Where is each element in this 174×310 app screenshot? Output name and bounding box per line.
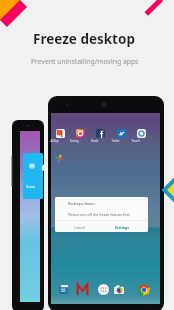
- button[interactable]: drawer: [98, 284, 109, 295]
- button[interactable]: instagram: [76, 129, 85, 138]
- staticText: Desktop is frozen.: [68, 202, 96, 206]
- staticText: Freeze desktop: [33, 30, 135, 48]
- staticText: Prevent uninstalling/moving apps: [31, 57, 139, 66]
- button[interactable]: twitter: [117, 129, 126, 138]
- staticText: Instagram: [70, 139, 79, 143]
- button[interactable]: Cancel: [72, 222, 86, 232]
- staticText: Please turn off the freeze feature first…: [68, 212, 131, 217]
- staticText: AliExpress: [50, 139, 59, 143]
- button[interactable]: camera: [114, 285, 124, 295]
- button[interactable]: gmail: [77, 284, 88, 295]
- button[interactable]: calc: [59, 285, 68, 294]
- staticText: Freeze desktop: [26, 185, 43, 189]
- staticText: Settings: [115, 225, 129, 230]
- staticText: Twitter: [111, 139, 120, 143]
- button[interactable]: chrome: [138, 284, 150, 296]
- staticText: Cancel: [74, 225, 85, 230]
- button[interactable]: white: [137, 129, 146, 138]
- button[interactable]: photos: [55, 154, 64, 163]
- staticText: Touch Screen: [131, 139, 140, 143]
- staticText: Facebook: [90, 139, 99, 143]
- button[interactable]: Settings: [114, 222, 130, 232]
- button[interactable]: aliexpress: [56, 129, 65, 138]
- button[interactable]: facebook: [96, 129, 105, 138]
